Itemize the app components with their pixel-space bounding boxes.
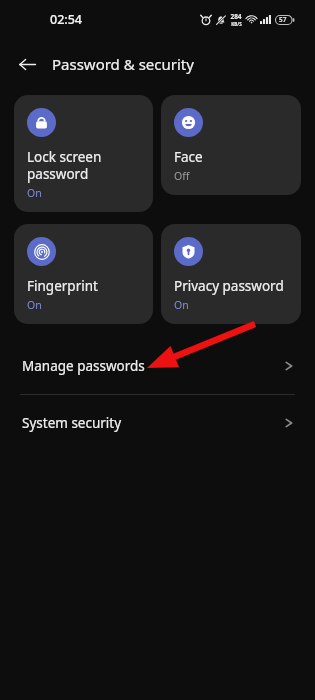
staticText: Password & security: [52, 54, 194, 74]
button[interactable]: Face: [161, 95, 301, 195]
staticText: On: [174, 298, 189, 312]
staticText: Face: [174, 148, 203, 166]
staticText: On: [27, 186, 42, 200]
button[interactable]: Lock screen password: [14, 95, 153, 212]
staticText: Off: [174, 169, 190, 183]
staticText: 284: [230, 12, 242, 21]
button[interactable]: Back: [10, 47, 44, 81]
staticText: Lock screen password: [27, 148, 102, 183]
button[interactable]: Fingerprint: [14, 224, 153, 324]
staticText: 57: [279, 15, 287, 24]
button[interactable]: Privacy password: [161, 224, 301, 324]
staticText: System security: [22, 414, 285, 432]
button[interactable]: Manage passwords: [0, 338, 315, 394]
staticText: KB/S: [231, 21, 242, 27]
staticText: On: [27, 298, 42, 312]
staticText: Privacy password: [174, 277, 284, 295]
staticText: Fingerprint: [27, 277, 98, 295]
button[interactable]: System security: [0, 395, 315, 451]
staticText: Manage passwords: [22, 357, 285, 375]
staticText: 02:54: [50, 11, 83, 28]
